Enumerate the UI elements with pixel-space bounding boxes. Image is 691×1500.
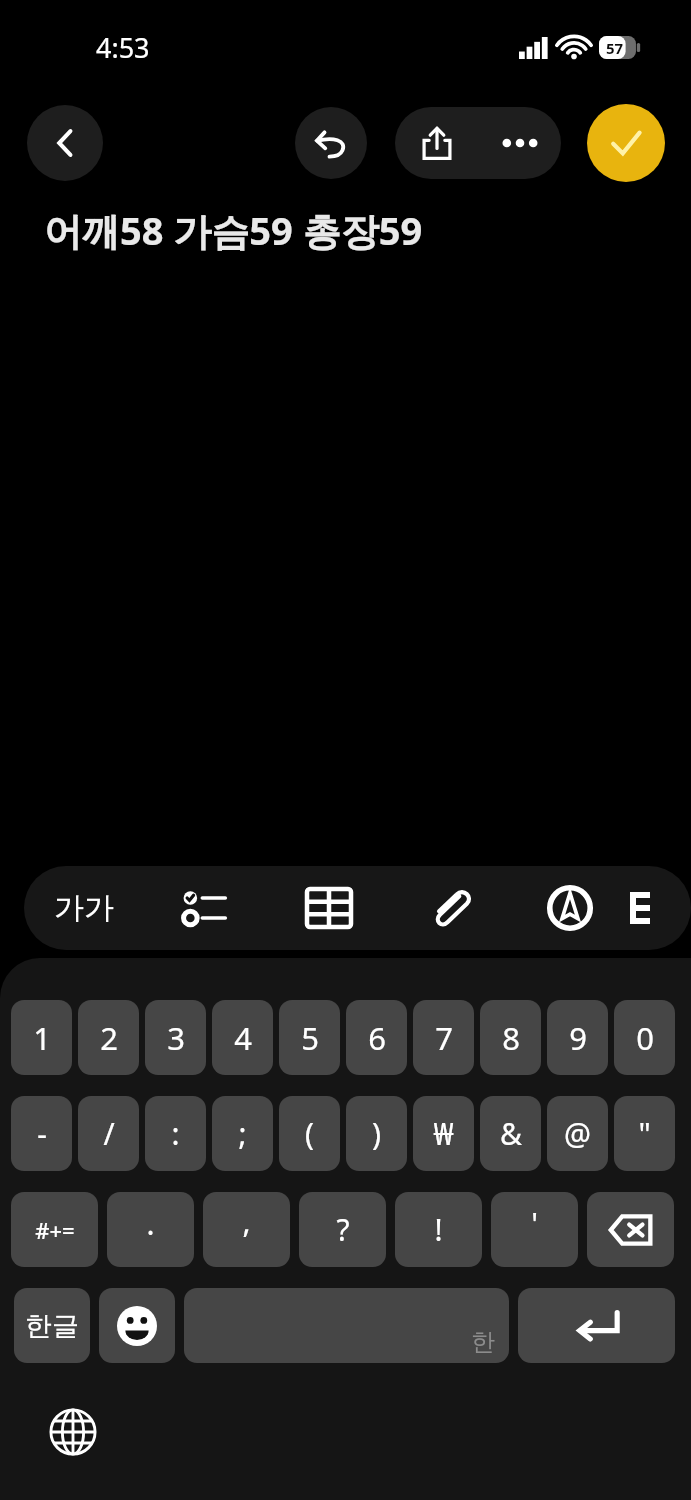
button[interactable]: More formatting — [630, 866, 691, 950]
button[interactable]: ! — [395, 1192, 482, 1267]
button[interactable]: 3 — [145, 1000, 206, 1075]
staticText: 2 — [100, 1017, 118, 1059]
staticText: 7 — [435, 1017, 453, 1059]
button[interactable]: Space — [184, 1288, 509, 1363]
staticText: ' — [531, 1203, 538, 1244]
staticText: 9 — [569, 1017, 587, 1059]
button[interactable]: 5 — [279, 1000, 340, 1075]
staticText: ? — [336, 1209, 350, 1250]
staticText: , — [242, 1201, 251, 1242]
button[interactable]: ₩ — [413, 1096, 474, 1171]
button[interactable]: Change language — [42, 1401, 104, 1463]
button[interactable]: ; — [212, 1096, 273, 1171]
staticText: 8 — [502, 1017, 520, 1059]
button[interactable]: 7 — [413, 1000, 474, 1075]
button[interactable]: Done — [587, 104, 665, 182]
button[interactable]: Undo — [295, 107, 367, 179]
button[interactable]: Back — [27, 105, 103, 181]
button[interactable]: & — [480, 1096, 541, 1171]
button[interactable]: - — [11, 1096, 72, 1171]
staticText: - — [37, 1113, 47, 1154]
staticText: 4 — [234, 1017, 252, 1059]
button[interactable]: 2 — [78, 1000, 139, 1075]
button[interactable]: ? — [299, 1192, 386, 1267]
staticText: 어깨58 가슴59 총장59 — [44, 204, 423, 256]
button[interactable]: 8 — [480, 1000, 541, 1075]
button[interactable]: 한글 — [14, 1288, 90, 1363]
staticText: 57 — [606, 38, 624, 58]
staticText: @ — [564, 1113, 591, 1154]
button[interactable]: Draw — [510, 866, 630, 950]
button[interactable]: ( — [279, 1096, 340, 1171]
staticText: ₩ — [433, 1113, 454, 1154]
button[interactable]: Table — [268, 866, 390, 950]
staticText: " — [638, 1113, 651, 1154]
staticText: 4:53 — [96, 29, 150, 66]
staticText: . — [146, 1203, 155, 1244]
staticText: 한글 — [25, 1309, 79, 1343]
staticText: 한 — [471, 1327, 495, 1357]
staticText: ( — [305, 1113, 314, 1154]
button[interactable]: 4 — [212, 1000, 273, 1075]
staticText: 3 — [167, 1017, 185, 1059]
button[interactable]: 1 — [11, 1000, 72, 1075]
button[interactable]: More options — [478, 107, 561, 179]
button[interactable]: #+= — [11, 1192, 98, 1267]
staticText: 6 — [368, 1017, 386, 1059]
button[interactable]: 9 — [547, 1000, 608, 1075]
button[interactable]: Share — [395, 107, 478, 179]
staticText: #+= — [35, 1215, 75, 1245]
staticText: ! — [434, 1209, 443, 1250]
button[interactable]: Emoji — [99, 1288, 175, 1363]
button[interactable]: , — [203, 1192, 290, 1267]
button[interactable]: Backspace — [587, 1192, 674, 1267]
button[interactable]: : — [145, 1096, 206, 1171]
button[interactable]: 0 — [614, 1000, 675, 1075]
staticText: ) — [372, 1113, 381, 1154]
button[interactable]: Checklist — [144, 866, 268, 950]
staticText: 0 — [636, 1017, 654, 1059]
button[interactable]: ) — [346, 1096, 407, 1171]
staticText: : — [171, 1113, 180, 1154]
button[interactable]: Attach — [390, 866, 510, 950]
button[interactable]: 6 — [346, 1000, 407, 1075]
staticText: 가가 — [54, 889, 114, 927]
staticText: & — [500, 1113, 522, 1154]
button[interactable]: . — [107, 1192, 194, 1267]
button[interactable]: Enter — [518, 1288, 675, 1363]
button[interactable]: " — [614, 1096, 675, 1171]
staticText: 5 — [301, 1017, 319, 1059]
staticText: 1 — [33, 1017, 51, 1059]
button[interactable]: @ — [547, 1096, 608, 1171]
staticText: ; — [238, 1113, 247, 1154]
button[interactable]: ' — [491, 1192, 578, 1267]
button[interactable]: Text format — [24, 866, 144, 950]
button[interactable]: / — [78, 1096, 139, 1171]
staticText: / — [103, 1113, 115, 1154]
